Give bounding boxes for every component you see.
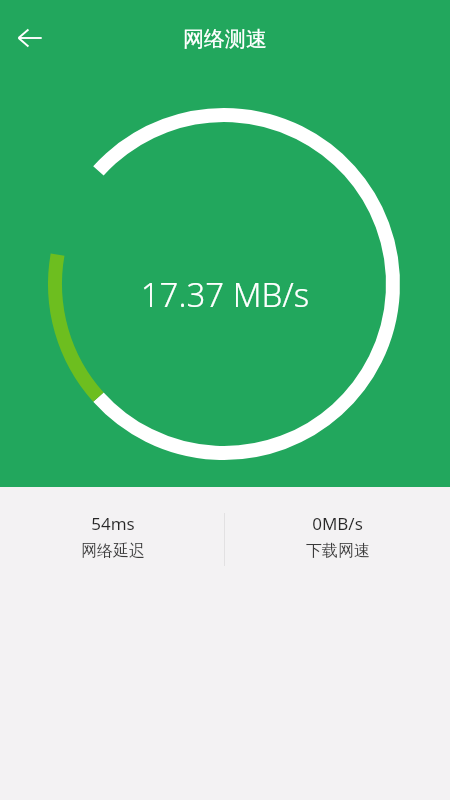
staticText: 17.37 MB/s	[0, 272, 450, 317]
button[interactable]: 54ms	[0, 487, 225, 582]
staticText: 下载网速	[306, 541, 370, 561]
staticText: 0MB/s	[312, 512, 363, 535]
staticText: 54ms	[91, 512, 135, 535]
staticText: 网络测速	[0, 26, 450, 52]
staticText: 网络延迟	[81, 541, 145, 561]
button[interactable]: 0MB/s	[225, 487, 450, 582]
button[interactable]: Back	[6, 14, 54, 62]
